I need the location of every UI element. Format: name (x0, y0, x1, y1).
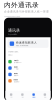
button[interactable]: 外部联系人 (5, 58, 50, 65)
staticText: 外部联系人 (13, 60, 18, 61)
staticText: 项目群组 (13, 73, 17, 74)
staticText: 按姓名、部门或手机号搜索 (16, 45, 28, 46)
button[interactable]: 项目群组 (5, 71, 50, 78)
staticText: 本月新增 86 位联系人 (8, 51, 18, 53)
button[interactable]: 标签管理 (5, 78, 50, 84)
staticText: 标签管理 (13, 79, 17, 81)
button[interactable]: 组织架构 (5, 65, 50, 71)
staticText: 内外通讯录 (4, 1, 39, 9)
button[interactable]: 通讯录 (28, 91, 39, 100)
staticText: 常用入口 (8, 54, 12, 56)
staticText: 快速查找联系人 (16, 41, 37, 44)
staticText: 企业通讯录与外部联系人统一管理 (4, 10, 49, 13)
staticText: 12 个部门 (13, 68, 18, 70)
staticText: 我的 (44, 96, 46, 98)
staticText: 首页 (10, 96, 12, 98)
staticText: 通讯录 (8, 28, 20, 33)
staticText: 通讯录 (32, 96, 35, 98)
button[interactable]: 快速查找联系人 (7, 39, 48, 48)
staticText: 自定义标签 9 (13, 81, 19, 83)
button[interactable]: 首页 (5, 91, 17, 100)
staticText: 协作群 26 (13, 74, 18, 76)
staticText: 客户 / 供应商 318 (13, 62, 21, 63)
staticText: 共 1,248 位联系人 (8, 33, 17, 35)
button[interactable]: 消息 (17, 91, 28, 100)
staticText: 组织架构 (13, 66, 17, 68)
staticText: 支持组织架构同步 · 权限可见范围设置 (4, 16, 20, 17)
staticText: 消息 (21, 96, 23, 98)
button[interactable]: 我的 (39, 91, 50, 100)
